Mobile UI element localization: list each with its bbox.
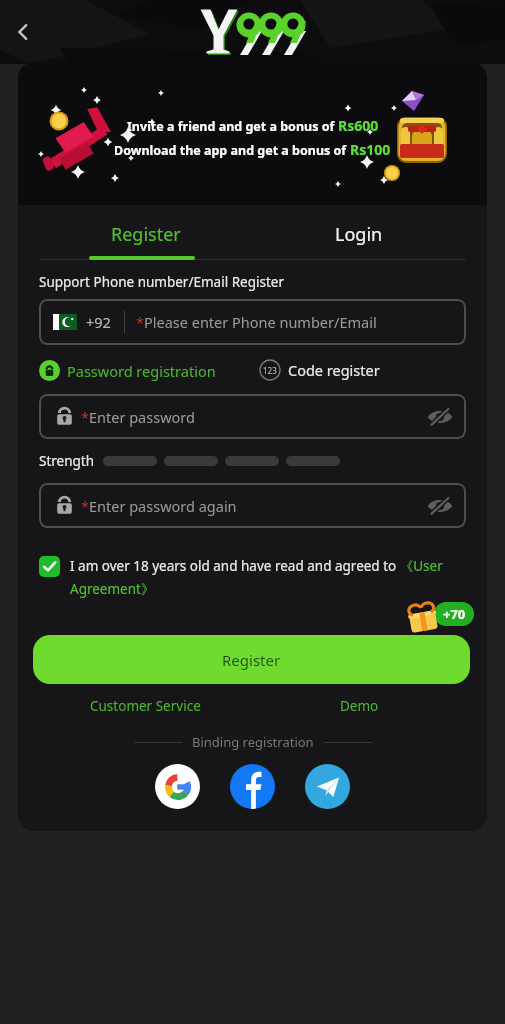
staticText: +70 xyxy=(443,605,466,623)
button[interactable]: Sign in with Google xyxy=(155,764,200,809)
button[interactable]: Register xyxy=(39,220,252,248)
staticText: Demo xyxy=(340,697,379,715)
staticText: * xyxy=(81,407,89,427)
staticText: Customer Service xyxy=(90,697,201,715)
staticText: I am over 18 years old and have read and… xyxy=(70,557,466,598)
staticText: Strength xyxy=(39,452,95,470)
staticText: Binding registration xyxy=(192,733,314,751)
button[interactable]: Demo xyxy=(252,697,466,715)
button[interactable]: Register xyxy=(33,635,470,684)
button[interactable]: Sign in with Facebook xyxy=(230,764,275,809)
staticText: Please enter Phone number/Email xyxy=(144,312,377,332)
staticText: Register xyxy=(111,222,181,247)
button[interactable]: +92 xyxy=(39,299,466,345)
staticText: Code register xyxy=(288,360,380,380)
button[interactable]: Back xyxy=(4,13,42,51)
button[interactable]: Sign in with Telegram xyxy=(305,764,350,809)
button[interactable]: 123 xyxy=(259,359,380,381)
staticText: Rs600 xyxy=(338,116,379,135)
button[interactable]: * xyxy=(39,394,466,439)
staticText: Enter password again xyxy=(89,496,237,516)
staticText: Support Phone number/Email Register xyxy=(39,273,284,291)
staticText: +92 xyxy=(86,312,111,332)
staticText: Download the app and get a bonus of xyxy=(114,142,350,159)
button[interactable]: Password registration xyxy=(39,360,216,381)
staticText: Enter password xyxy=(89,407,195,427)
staticText: Login xyxy=(335,222,383,247)
staticText: Password registration xyxy=(67,361,216,381)
button[interactable]: Customer Service xyxy=(39,697,252,715)
staticText: Rs100 xyxy=(350,140,391,159)
staticText: * xyxy=(81,496,89,516)
staticText: Invite a friend and get a bonus of xyxy=(127,118,338,135)
staticText: * xyxy=(136,312,144,332)
button[interactable]: Toggle password visibility xyxy=(421,398,459,436)
button[interactable]: Agree to terms xyxy=(39,556,60,577)
staticText: Register xyxy=(222,650,281,670)
button[interactable]: * xyxy=(39,483,466,528)
button[interactable]: Login xyxy=(252,220,466,248)
button[interactable]: Toggle password visibility xyxy=(421,487,459,525)
staticText: 123 xyxy=(263,365,277,376)
